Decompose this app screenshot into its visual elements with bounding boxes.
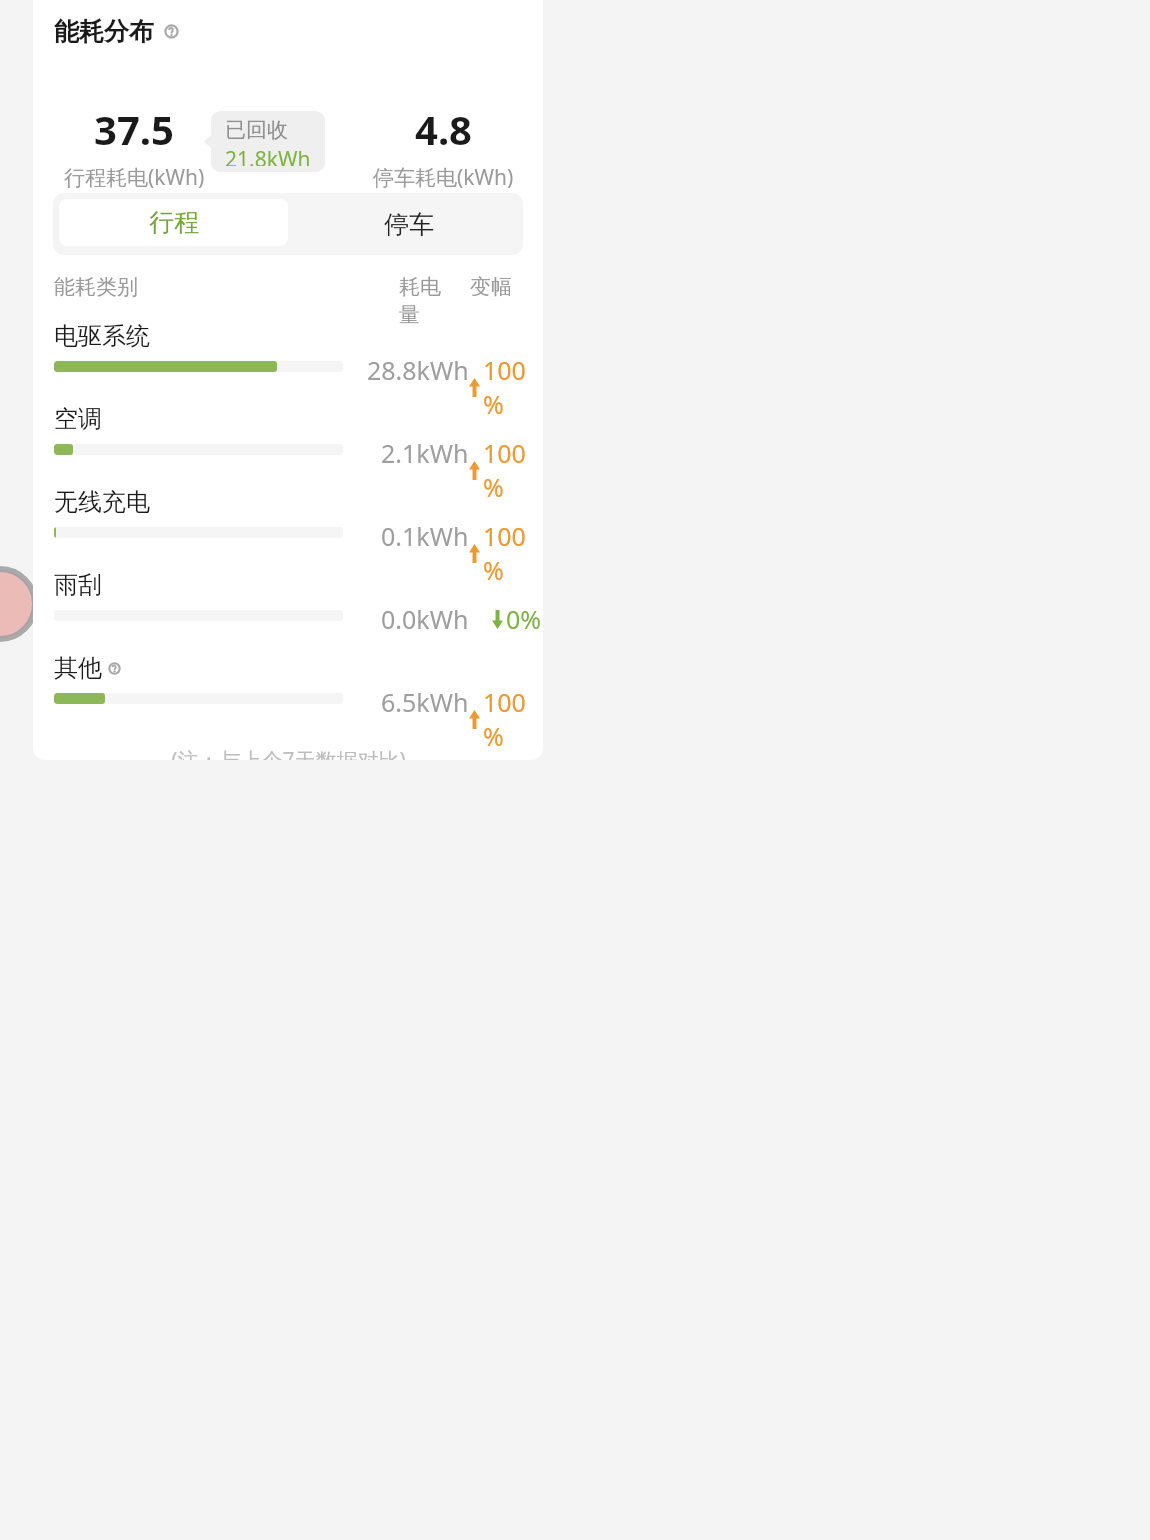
staticText: 无线充电 xyxy=(54,487,150,517)
staticText: 行程 xyxy=(149,207,199,238)
button[interactable]: 能耗分布 xyxy=(54,16,179,47)
staticText: 雨刮 xyxy=(54,570,102,600)
staticText: 2.1kWh xyxy=(381,436,469,470)
staticText: 0.0kWh xyxy=(381,602,469,636)
staticText: 100% xyxy=(483,436,542,504)
staticText: 100% xyxy=(483,685,542,753)
staticText: 6.5kWh xyxy=(381,685,469,719)
staticText: 能耗分布 xyxy=(54,16,154,47)
staticText: 4.8 xyxy=(415,102,472,156)
button[interactable]: 行程 xyxy=(59,199,288,246)
button[interactable]: 无线充电 xyxy=(33,481,543,564)
staticText: 其他 xyxy=(54,653,102,683)
button[interactable]: 雨刮 xyxy=(33,564,543,647)
staticText: 变幅 xyxy=(470,274,512,300)
staticText: 停车 xyxy=(384,209,434,240)
staticText: 已回收 xyxy=(225,117,288,143)
staticText: 28.8kWh xyxy=(367,353,469,387)
staticText: 100% xyxy=(483,519,542,587)
staticText: 37.5 xyxy=(94,102,174,156)
staticText: (注：与上个7天数据对比) xyxy=(171,746,406,760)
button[interactable]: Help xyxy=(164,24,179,39)
staticText: 耗电量 xyxy=(399,274,456,328)
staticText: 空调 xyxy=(54,404,102,434)
button[interactable]: Help xyxy=(108,662,121,675)
staticText: 21.8kWh xyxy=(225,145,311,166)
staticText: 停车耗电(kWh) xyxy=(373,163,514,192)
staticText: 行程耗电(kWh) xyxy=(64,163,205,192)
staticText: 100% xyxy=(483,353,542,421)
button[interactable]: 空调 xyxy=(33,398,543,481)
staticText: 0% xyxy=(506,602,542,636)
staticText: 能耗类别 xyxy=(54,274,138,300)
button[interactable]: 停车 xyxy=(294,193,523,255)
other: Badge xyxy=(0,566,38,642)
staticText: 0.1kWh xyxy=(381,519,469,553)
staticText: 电驱系统 xyxy=(54,321,150,351)
button[interactable]: 电驱系统 xyxy=(33,315,543,398)
button[interactable]: 其他 xyxy=(33,647,543,730)
